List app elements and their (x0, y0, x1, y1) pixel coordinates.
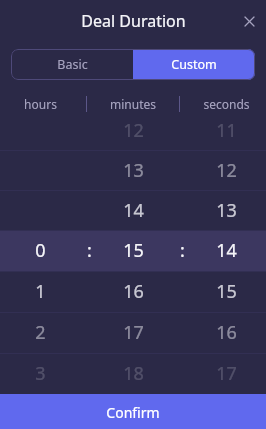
button[interactable]: Basic (11, 49, 133, 80)
staticText: : (180, 238, 185, 263)
button[interactable]: Custom (133, 49, 255, 80)
staticText: seconds (203, 96, 250, 112)
staticText: 11 (216, 118, 237, 143)
staticText: 0 (35, 238, 46, 263)
button[interactable]: 1 (0, 271, 266, 312)
staticText: 15 (123, 238, 144, 263)
staticText: 13 (123, 158, 144, 183)
staticText: 14 (216, 238, 237, 263)
staticText: 16 (123, 279, 144, 304)
staticText: Basic (57, 56, 88, 73)
staticText: 13 (216, 198, 237, 223)
staticText: Confirm (106, 403, 160, 422)
button[interactable]: 0 (0, 230, 266, 271)
staticText: : (87, 238, 92, 263)
staticText: 2 (35, 320, 46, 345)
staticText: 12 (216, 158, 237, 183)
staticText: 3 (35, 361, 46, 386)
staticText: 1 (35, 279, 46, 304)
button[interactable]: 3 (0, 353, 266, 394)
button[interactable]: 2 (0, 312, 266, 353)
button[interactable]: Confirm (0, 394, 266, 429)
staticText: 16 (216, 320, 237, 345)
button[interactable]: 13 (0, 150, 266, 190)
button[interactable]: Close (236, 8, 262, 34)
staticText: hours (24, 96, 57, 112)
staticText: Custom (171, 56, 217, 73)
staticText: 17 (216, 361, 237, 386)
staticText: 12 (123, 118, 144, 143)
staticText: 17 (123, 320, 144, 345)
button[interactable]: 14 (0, 190, 266, 230)
staticText: 15 (216, 279, 237, 304)
staticText: 14 (123, 198, 144, 223)
button[interactable]: 12 (0, 110, 266, 150)
staticText: Deal Duration (81, 10, 186, 32)
staticText: minutes (110, 96, 156, 112)
staticText: 18 (123, 361, 144, 386)
